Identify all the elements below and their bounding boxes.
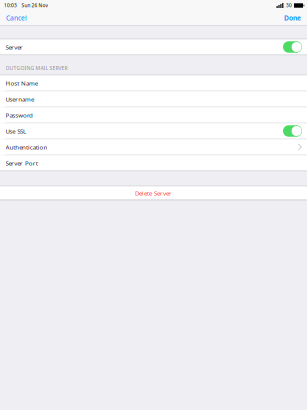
staticText: 10:03 [4,2,17,9]
button[interactable]: Use SSL [0,123,307,138]
staticText: Server [5,43,23,51]
button[interactable]: Server [0,39,307,54]
button[interactable]: Delete Server [0,186,307,199]
staticText: Delete Server [135,189,172,197]
button[interactable]: Authentication [0,139,307,154]
staticText: 30 [286,2,292,9]
staticText: Server Port [5,159,38,167]
staticText: Sun 26 Nov [21,2,47,9]
button[interactable]: Host Name [0,75,307,90]
button[interactable]: Done [278,11,307,25]
staticText: Cancel [6,13,27,23]
staticText: Password [5,111,33,119]
button[interactable]: Password [0,107,307,122]
staticText: Username [5,95,34,103]
button[interactable]: Cancel [0,11,33,25]
staticText: OUTGOING MAIL SERVER [5,65,67,71]
staticText: Host Name [5,79,38,87]
staticText: Authentication [5,143,47,151]
button[interactable]: Server Port [0,155,307,170]
staticText: Use SSL [5,127,26,135]
staticText: Done [284,13,301,23]
button[interactable]: Username [0,91,307,106]
